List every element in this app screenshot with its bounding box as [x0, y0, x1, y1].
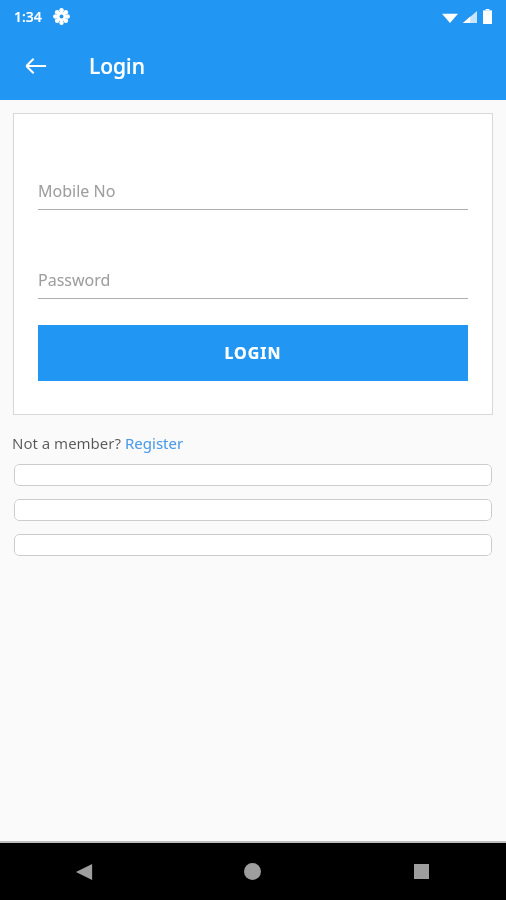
button[interactable]: Back [14, 44, 58, 88]
button[interactable] [14, 534, 492, 556]
button[interactable]: Home [168, 843, 337, 900]
button[interactable]: LOGIN [38, 325, 468, 381]
staticText: Password [38, 269, 111, 291]
button[interactable]: Back [0, 843, 168, 900]
button[interactable]: Password [38, 269, 468, 299]
staticText: LOGIN [224, 342, 282, 364]
button[interactable] [14, 499, 492, 521]
staticText: 1:34 [14, 7, 42, 26]
staticText: Mobile No [38, 180, 116, 202]
staticText: Register [125, 433, 184, 453]
staticText: Login [89, 52, 145, 81]
staticText: Not a member? [12, 433, 125, 453]
button[interactable]: Register [125, 433, 184, 453]
button[interactable]: Recent apps [337, 843, 506, 900]
button[interactable] [14, 464, 492, 486]
button[interactable]: Mobile No [38, 180, 468, 210]
